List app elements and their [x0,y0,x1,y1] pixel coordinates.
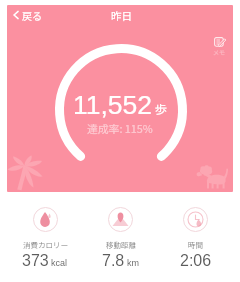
staticText: 移動距離 [106,239,136,250]
staticText: 達成率: 115% [87,120,153,136]
button[interactable]: 戻る [7,5,50,25]
button[interactable]: メモ [211,35,228,59]
button[interactable]: 移動距離 [83,207,158,270]
staticText: メモ [213,48,226,57]
button[interactable]: 時間 [158,207,233,270]
staticText: 11,552 [73,90,153,120]
staticText: 2:06 [180,252,212,270]
button[interactable]: 消費カロリー [7,207,83,270]
staticText: 戻る [22,8,42,22]
staticText: 時間 [188,239,203,250]
staticText: 歩 [155,100,168,117]
staticText: 7.8 [102,252,125,270]
staticText: 373 [22,252,49,270]
staticText: km [127,258,139,268]
staticText: 消費カロリー [23,239,68,250]
staticText: kcal [51,258,68,268]
staticText: 昨日 [111,8,132,23]
